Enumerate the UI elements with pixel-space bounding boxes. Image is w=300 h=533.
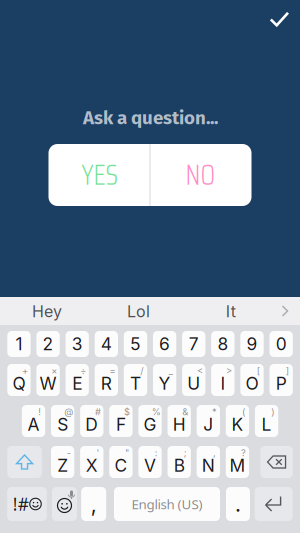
button[interactable]: 9 xyxy=(240,331,264,357)
button[interactable]: T xyxy=(124,364,147,396)
button[interactable]: H xyxy=(167,405,191,437)
button[interactable]: . xyxy=(226,487,250,521)
button[interactable]: Emoji xyxy=(52,487,77,521)
staticText: F xyxy=(116,414,126,435)
staticText: W xyxy=(40,373,57,394)
button[interactable]: English (US) xyxy=(114,487,220,521)
button[interactable]: Return xyxy=(255,487,293,521)
staticText: > xyxy=(226,365,232,376)
button[interactable]: Done xyxy=(259,0,299,38)
staticText: NO xyxy=(185,153,215,197)
button[interactable]: Lol xyxy=(93,298,183,325)
button[interactable]: F xyxy=(109,405,133,437)
button[interactable]: Delete xyxy=(260,446,293,478)
button[interactable]: 6 xyxy=(153,331,176,357)
button[interactable]: P xyxy=(269,364,293,396)
button[interactable]: Numbers and symbols xyxy=(7,487,47,521)
button[interactable]: G xyxy=(138,405,162,437)
button[interactable]: J xyxy=(197,405,220,437)
staticText: YES xyxy=(81,153,117,197)
staticText: - xyxy=(67,447,71,458)
button[interactable]: R xyxy=(95,364,118,396)
button[interactable]: S xyxy=(51,405,74,437)
staticText: It xyxy=(226,302,236,321)
button[interactable]: Z xyxy=(51,446,74,478)
staticText: A xyxy=(27,414,39,435)
staticText: ) xyxy=(271,406,274,417)
button[interactable]: 4 xyxy=(95,331,118,357)
staticText: 8 xyxy=(217,333,228,354)
staticText: 7 xyxy=(189,333,199,354)
staticText: , xyxy=(213,447,216,458)
staticText: ] xyxy=(286,365,289,376)
button[interactable]: U xyxy=(182,364,205,396)
button[interactable]: V xyxy=(138,446,162,478)
staticText: . xyxy=(235,491,241,517)
button[interactable]: Shift xyxy=(7,446,42,478)
staticText: O xyxy=(245,373,258,394)
button[interactable]: X xyxy=(80,446,103,478)
staticText: English (US) xyxy=(131,495,202,513)
button[interactable]: E xyxy=(66,364,89,396)
button[interactable]: I xyxy=(211,364,234,396)
staticText: 0 xyxy=(276,333,287,354)
button[interactable]: D xyxy=(80,405,103,437)
button[interactable]: NO xyxy=(150,144,250,206)
button[interactable]: More suggestions xyxy=(274,297,296,324)
button[interactable]: Y xyxy=(153,364,176,396)
staticText: T xyxy=(130,373,141,394)
staticText: ; xyxy=(184,447,187,458)
button[interactable]: B xyxy=(167,446,191,478)
button[interactable]: 0 xyxy=(269,331,293,357)
staticText: S xyxy=(57,414,68,435)
staticText: Hey xyxy=(32,302,62,321)
button[interactable]: It xyxy=(190,298,272,325)
staticText: 4 xyxy=(101,333,112,354)
staticText: @ xyxy=(64,406,73,417)
staticText: M xyxy=(229,455,245,476)
staticText: & xyxy=(182,406,188,417)
button[interactable]: M xyxy=(226,446,249,478)
staticText: 3 xyxy=(72,333,83,354)
staticText: ' xyxy=(96,447,99,458)
staticText: * xyxy=(212,406,217,417)
staticText: Z xyxy=(57,455,68,476)
staticText: J xyxy=(203,414,213,435)
button[interactable]: 3 xyxy=(66,331,89,357)
staticText: !# xyxy=(13,492,29,515)
staticText: : xyxy=(155,447,158,458)
button[interactable]: YES xyxy=(49,144,149,206)
staticText: ( xyxy=(242,406,245,417)
staticText: N xyxy=(202,455,215,476)
staticText: , xyxy=(91,491,97,517)
staticText: K xyxy=(231,414,243,435)
staticText: " xyxy=(125,447,129,458)
button[interactable]: 1 xyxy=(7,331,31,357)
staticText: I xyxy=(220,373,225,394)
button[interactable]: Hey xyxy=(2,298,92,325)
staticText: $ xyxy=(124,406,130,417)
staticText: Q xyxy=(12,373,25,394)
button[interactable]: 8 xyxy=(211,331,234,357)
button[interactable]: K xyxy=(226,405,249,437)
button[interactable]: C xyxy=(109,446,133,478)
button[interactable]: 7 xyxy=(182,331,205,357)
button[interactable]: Q xyxy=(7,364,31,396)
button[interactable]: , xyxy=(81,487,106,521)
button[interactable]: O xyxy=(240,364,264,396)
staticText: / xyxy=(140,365,143,376)
staticText: X xyxy=(86,455,98,476)
button[interactable]: W xyxy=(36,364,60,396)
button[interactable]: 5 xyxy=(124,331,147,357)
staticText: 6 xyxy=(159,333,170,354)
staticText: H xyxy=(173,414,186,435)
button[interactable]: N xyxy=(197,446,220,478)
button[interactable]: L xyxy=(255,405,278,437)
button[interactable]: 2 xyxy=(36,331,60,357)
staticText: B xyxy=(174,455,185,476)
staticText: 9 xyxy=(246,333,257,354)
staticText: % xyxy=(152,406,161,417)
staticText: < xyxy=(197,365,203,376)
button[interactable]: A xyxy=(22,405,45,437)
staticText: D xyxy=(85,414,98,435)
